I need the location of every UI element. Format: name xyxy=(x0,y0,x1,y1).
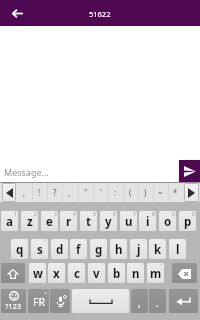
staticText: w xyxy=(33,266,43,282)
staticText: l xyxy=(176,242,180,258)
button[interactable]: Shift xyxy=(1,263,25,283)
staticText: ˙ xyxy=(44,263,45,270)
staticText: 1 xyxy=(14,211,17,218)
staticText: ˙ xyxy=(66,239,67,246)
button[interactable]: Symbols xyxy=(1,289,26,313)
button[interactable]: u xyxy=(120,211,137,231)
button[interactable]: d xyxy=(51,239,68,259)
button[interactable]: ) xyxy=(138,183,153,202)
button[interactable]: f xyxy=(70,239,87,259)
button[interactable]: c xyxy=(68,263,85,283)
button[interactable]: g xyxy=(90,239,107,259)
staticText: ! xyxy=(38,187,41,198)
button[interactable]: , xyxy=(17,183,32,202)
staticText: ˙ xyxy=(164,239,165,246)
button[interactable]: j xyxy=(130,239,147,259)
button[interactable]: : xyxy=(108,183,123,202)
button[interactable]: Space xyxy=(72,289,129,313)
staticText: 8 xyxy=(152,211,155,218)
staticText: ˙ xyxy=(83,263,84,270)
button[interactable]: * xyxy=(168,183,183,202)
staticText: ˙ xyxy=(26,239,27,246)
staticText: k xyxy=(154,242,162,258)
staticText: 4 xyxy=(73,211,76,218)
staticText: : xyxy=(114,187,117,198)
staticText: ( xyxy=(129,187,132,198)
button[interactable]: Scroll right xyxy=(184,183,199,202)
staticText: ˝ xyxy=(160,263,163,270)
staticText: ˙ xyxy=(125,239,126,246)
staticText: 9 xyxy=(172,211,175,218)
button[interactable]: l xyxy=(169,239,186,259)
button[interactable]: Scroll left xyxy=(2,183,16,202)
button[interactable]: v xyxy=(88,263,105,283)
staticText: ˙ xyxy=(105,239,106,246)
button[interactable]: ' xyxy=(93,183,108,202)
button[interactable]: x xyxy=(48,263,65,283)
staticText: ˝ xyxy=(44,239,47,246)
button[interactable]: Back xyxy=(5,1,29,25)
button[interactable]: FR xyxy=(28,289,49,313)
staticText: 0 xyxy=(192,211,195,218)
button[interactable]: m xyxy=(147,263,164,283)
staticText: d xyxy=(56,242,64,258)
button[interactable]: ? xyxy=(47,183,62,202)
button[interactable]: i xyxy=(139,211,156,231)
staticText: v xyxy=(93,266,100,282)
button[interactable]: Backspace xyxy=(172,263,197,283)
staticText: ?123 xyxy=(5,301,22,311)
staticText: x xyxy=(53,266,60,282)
button[interactable]: y xyxy=(100,211,117,231)
staticText: ˙ xyxy=(123,263,124,270)
staticText: 51622 xyxy=(89,9,111,19)
staticText: y xyxy=(105,214,112,230)
staticText: g xyxy=(95,242,103,258)
button[interactable]: a xyxy=(1,211,18,231)
button[interactable]: w xyxy=(29,263,46,283)
staticText: f xyxy=(76,242,81,258)
button[interactable]: h xyxy=(110,239,127,259)
staticText: ? xyxy=(53,187,57,198)
staticText: ˙ xyxy=(103,263,104,270)
staticText: 2 xyxy=(34,211,37,218)
button[interactable]: s xyxy=(31,239,48,259)
staticText: 5 xyxy=(93,211,96,218)
button[interactable]: Enter xyxy=(169,289,198,313)
staticText: s xyxy=(37,242,43,258)
staticText: e xyxy=(46,214,53,230)
staticText: o xyxy=(164,214,172,230)
button[interactable]: . xyxy=(149,289,166,313)
button[interactable]: , xyxy=(131,289,148,313)
staticText: 6 xyxy=(113,211,116,218)
staticText: ' xyxy=(100,187,102,198)
button[interactable]: Send xyxy=(179,160,200,182)
staticText: ˝ xyxy=(143,239,146,246)
button[interactable]: ! xyxy=(32,183,47,202)
button[interactable]: b xyxy=(108,263,125,283)
button[interactable]: q xyxy=(11,239,28,259)
button[interactable]: n xyxy=(127,263,144,283)
button[interactable]: o xyxy=(159,211,176,231)
staticText: , xyxy=(68,187,71,198)
button[interactable]: r xyxy=(60,211,77,231)
button[interactable]: e xyxy=(41,211,58,231)
button[interactable]: p xyxy=(179,211,196,231)
staticText: 7 xyxy=(133,211,136,218)
staticText: ˙ xyxy=(85,239,86,246)
button[interactable]: t xyxy=(80,211,97,231)
staticText: n xyxy=(132,266,140,282)
staticText: 3 xyxy=(54,211,57,218)
staticText: z xyxy=(27,214,33,230)
staticText: ˙ xyxy=(142,263,143,270)
button[interactable]: ( xyxy=(123,183,138,202)
staticText: j xyxy=(137,242,141,258)
button[interactable]: , xyxy=(62,183,77,202)
staticText: p xyxy=(184,214,192,230)
staticText: i xyxy=(146,214,150,230)
button[interactable]: " xyxy=(78,183,93,202)
button[interactable]: z xyxy=(21,211,38,231)
button[interactable]: ~ xyxy=(153,183,168,202)
button[interactable]: Voice input xyxy=(50,289,70,313)
staticText: m xyxy=(150,266,162,282)
button[interactable]: k xyxy=(149,239,166,259)
